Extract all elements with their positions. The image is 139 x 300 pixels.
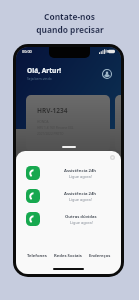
- button[interactable]: Assistência 24h: [16, 189, 121, 203]
- staticText: Ligue agora!: [69, 197, 92, 202]
- staticText: Assistência 24h: [64, 168, 97, 174]
- staticText: Ligue agora!: [70, 220, 93, 225]
- staticText: Redes Sociais: [54, 253, 82, 259]
- staticText: 00:00: [22, 49, 32, 54]
- staticText: Contate-nos: [44, 11, 95, 22]
- staticText: Endereços: [89, 253, 111, 259]
- staticText: Assistência 24h: [64, 191, 97, 197]
- button[interactable]: Perfil: [101, 68, 112, 79]
- button[interactable]: Outras dúvidas: [16, 212, 121, 226]
- staticText: Telefones: [27, 253, 47, 259]
- staticText: HRV-1234: [37, 106, 68, 115]
- staticText: Outras dúvidas: [65, 214, 97, 220]
- button[interactable]: Redes Sociais: [52, 253, 84, 259]
- button[interactable]: Telefones: [21, 253, 52, 259]
- button[interactable]: Fechar: [110, 155, 115, 160]
- staticText: Olá, Artur!: [27, 66, 62, 75]
- staticText: HONDA: [37, 120, 49, 124]
- button[interactable]: Assistência 24h: [16, 166, 121, 180]
- button[interactable]: Endereços: [84, 253, 116, 259]
- staticText: Ligue agora!: [69, 174, 92, 179]
- staticText: Seja bem-vindo: [27, 76, 52, 81]
- staticText: quando precisar: [36, 24, 104, 35]
